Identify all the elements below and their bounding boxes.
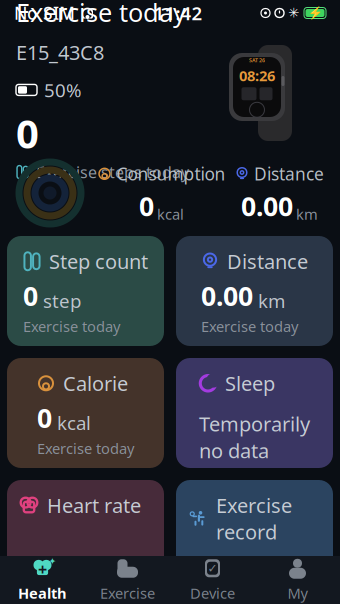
button[interactable]: My [255,556,340,604]
staticText: kcal [157,204,184,224]
button[interactable]: Calorie [7,358,164,468]
staticText: + [38,559,47,580]
staticText: Exercise today [16,0,186,29]
staticText: E15_43C8 [16,39,104,66]
staticText: Exercise today [23,316,120,336]
staticText: ✳ [288,5,299,20]
staticText: Sleep [225,370,275,397]
button[interactable]: Step count [7,236,164,346]
staticText: Exercise [100,583,155,603]
staticText: Exercise today [37,438,134,458]
staticText: Exercise record [216,492,292,545]
staticText: Exercise steps today [36,161,189,183]
staticText: ✦ [48,556,56,567]
staticText: Health [18,583,67,603]
button[interactable]: Distance [176,236,333,346]
staticText: ✓ [207,561,217,575]
staticText: 0 [23,278,38,313]
staticText: 0 [16,106,39,159]
staticText: Step count [49,248,148,275]
staticText: My [287,583,307,603]
staticText: 11:42 [153,1,202,25]
button[interactable]: ✓ [170,556,255,604]
staticText: Heart rate [47,492,141,519]
staticText: 0.00 [201,278,253,313]
staticText: step [43,288,81,313]
button[interactable]: Heart rate [7,480,164,602]
staticText: ⚡ [307,6,322,20]
staticText: No SIM [14,1,75,24]
button[interactable]: Exercise [85,556,170,604]
staticText: km [296,204,318,224]
staticText: Calorie [63,370,128,397]
staticText: Exercise today [201,316,298,336]
staticText: Distance [227,248,308,275]
staticText: 0.00 [241,188,293,224]
staticText: kcal [57,410,91,435]
staticText: 50% [44,77,82,102]
staticText: km [258,288,285,313]
button[interactable]: + [0,556,85,604]
staticText: Distance [254,162,324,185]
staticText: Consumption [116,162,225,185]
staticText: 0 [139,188,154,224]
staticText: Temporarily no data [199,411,310,464]
staticText: Device [190,583,235,603]
staticText: 08:26 [239,66,275,85]
staticText: SAT 26 [249,57,265,64]
button[interactable]: Sleep [176,358,333,468]
button[interactable]: Exercise record [176,480,333,602]
staticText: 0 [37,400,52,435]
